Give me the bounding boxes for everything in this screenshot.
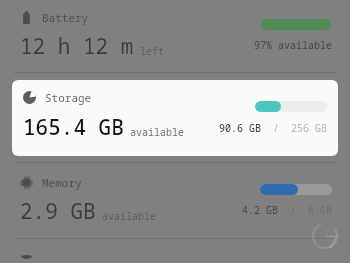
staticText: 165.4 GB xyxy=(23,113,124,142)
staticText: 97% available xyxy=(254,38,332,52)
staticText: 4.2 GB xyxy=(242,203,278,217)
button[interactable]: App protection xyxy=(0,251,350,263)
staticText: available xyxy=(130,125,184,139)
staticText: / 256 GB xyxy=(261,121,327,135)
button[interactable]: Memory xyxy=(0,169,350,232)
staticText: Storage xyxy=(45,90,92,105)
button[interactable]: Battery xyxy=(0,4,350,67)
staticText: Battery xyxy=(42,10,89,25)
button[interactable]: Storage xyxy=(12,80,338,156)
staticText: left xyxy=(140,44,164,58)
staticText: / 8 GB xyxy=(278,203,332,217)
staticText: 12 h 12 m xyxy=(20,32,134,61)
staticText: Memory xyxy=(42,175,82,190)
staticText: 2.9 GB xyxy=(20,197,96,226)
staticText: available xyxy=(102,209,156,223)
other: Logo watermark xyxy=(310,221,340,251)
staticText: 90.6 GB xyxy=(219,121,261,135)
